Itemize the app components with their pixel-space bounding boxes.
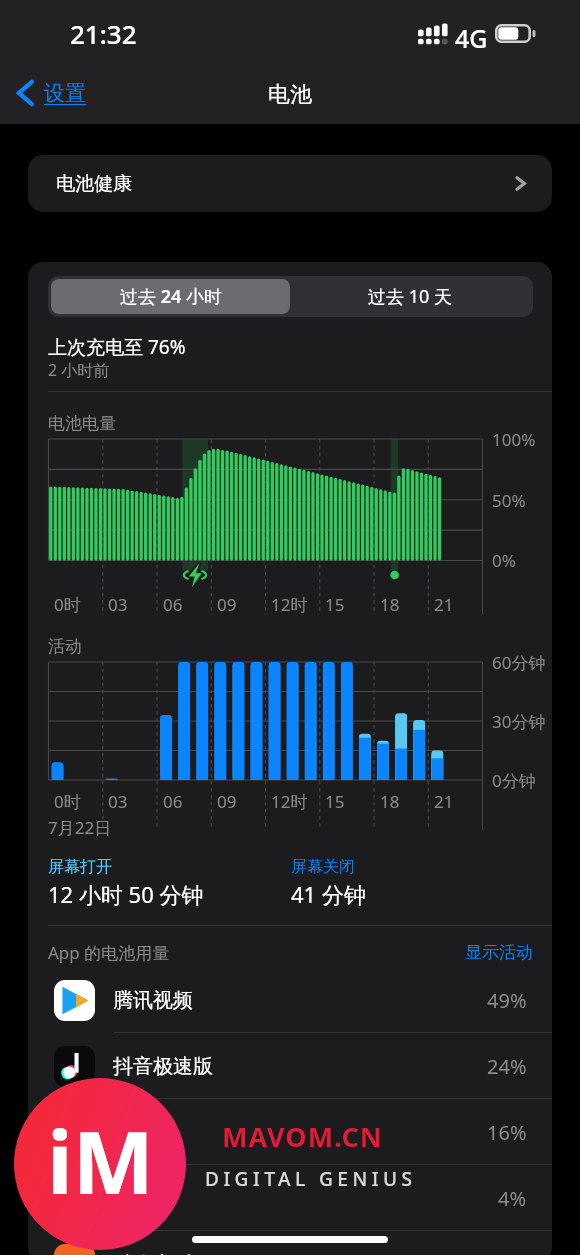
staticText: 设置: [44, 80, 86, 106]
staticText: 09: [217, 790, 237, 813]
staticText: 18: [380, 790, 400, 813]
staticText: 屏幕关闭: [291, 857, 355, 877]
staticText: 30分钟: [492, 710, 546, 733]
button[interactable]: 电池健康: [28, 155, 552, 212]
staticText: 微信: [113, 1120, 487, 1145]
staticText: 0时: [54, 593, 81, 616]
staticText: 21:32: [70, 16, 137, 51]
staticText: 电池电量: [48, 413, 116, 434]
staticText: 03: [108, 593, 128, 616]
staticText: 2 小时前: [48, 359, 110, 381]
button[interactable]: 运动: [28, 1165, 552, 1231]
staticText: iM: [47, 1102, 154, 1219]
staticText: 21: [434, 790, 454, 813]
staticText: 上次充电至 76%: [48, 334, 186, 360]
staticText: 16%: [487, 1119, 527, 1146]
button[interactable]: 酷狗音乐: [28, 1231, 552, 1255]
staticText: DIGITAL GENIUS: [205, 1166, 417, 1192]
staticText: 电池: [268, 81, 312, 109]
staticText: 腾讯视频: [113, 988, 487, 1013]
staticText: MAVOM.CN: [222, 1118, 383, 1155]
staticText: 0%: [492, 549, 516, 572]
staticText: 0分钟: [492, 769, 536, 792]
staticText: 60分钟: [492, 651, 546, 674]
button[interactable]: Back: [0, 73, 96, 113]
staticText: 49%: [487, 987, 527, 1014]
staticText: 21: [434, 593, 454, 616]
staticText: 0时: [54, 790, 81, 813]
staticText: 09: [217, 593, 237, 616]
staticText: 过去 24 小时: [120, 284, 222, 309]
staticText: 活动: [48, 636, 82, 657]
other: Back: [16, 79, 34, 107]
button[interactable]: 过去 24 小时: [51, 279, 290, 314]
staticText: 抖音极速版: [113, 1054, 487, 1079]
staticText: 屏幕打开: [48, 857, 112, 877]
staticText: 12 小时 50 分钟: [48, 879, 204, 909]
staticText: App 的电池用量: [48, 941, 465, 964]
staticText: 7月22日: [48, 816, 112, 839]
staticText: 100%: [492, 428, 536, 451]
staticText: 电池健康: [56, 172, 132, 196]
staticText: 4G: [455, 21, 488, 55]
staticText: 过去 10 天: [368, 284, 452, 309]
staticText: 12时: [271, 790, 308, 813]
staticText: 03: [108, 790, 128, 813]
staticText: 50%: [492, 489, 526, 512]
button[interactable]: 显示活动: [465, 942, 533, 963]
staticText: 15: [325, 790, 345, 813]
staticText: 运动: [113, 1186, 498, 1211]
staticText: 18: [380, 593, 400, 616]
staticText: 显示活动: [465, 942, 533, 963]
staticText: 24%: [487, 1053, 527, 1080]
button[interactable]: 微信: [28, 1099, 552, 1165]
staticText: 酷狗音乐: [113, 1252, 498, 1255]
button[interactable]: 过去 10 天: [290, 279, 530, 314]
button[interactable]: 腾讯视频: [28, 967, 552, 1033]
staticText: 12时: [271, 593, 308, 616]
staticText: 4%: [498, 1185, 527, 1212]
staticText: 06: [163, 593, 183, 616]
button[interactable]: 抖音极速版: [28, 1033, 552, 1099]
staticText: 41 分钟: [291, 879, 366, 909]
staticText: 06: [163, 790, 183, 813]
staticText: 15: [325, 593, 345, 616]
